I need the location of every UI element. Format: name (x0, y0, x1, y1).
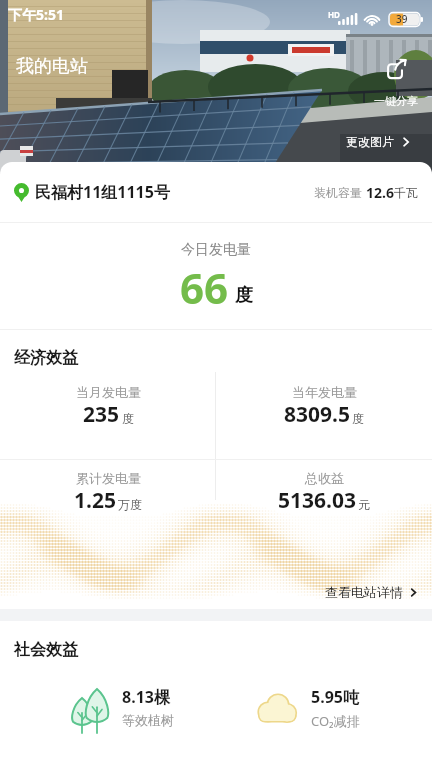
staticText: 度 (235, 284, 253, 307)
staticText: 经济效益 (14, 348, 78, 368)
staticText: 装机容量 (314, 184, 366, 200)
staticText: 66 (180, 259, 229, 316)
staticText: 累计发电量 (76, 470, 141, 486)
staticText: 总收益 (305, 470, 344, 486)
staticText: 一键分享 (374, 94, 418, 108)
staticText: 8.13棵 (122, 686, 170, 708)
staticText: 当年发电量 (292, 384, 357, 400)
staticText: 当月发电量 (76, 384, 141, 400)
button[interactable]: 一键分享 (374, 52, 418, 108)
staticText: 等效植树 (122, 712, 174, 728)
staticText: HD (328, 9, 340, 20)
staticText: CO₂减排 (311, 712, 360, 730)
staticText: 5.95吨 (311, 686, 359, 708)
staticText: 8309.5 (284, 400, 350, 429)
staticText: 12.6 (366, 183, 394, 202)
staticText: 下午5:51 (8, 5, 64, 24)
staticText: 235 (83, 400, 120, 429)
staticText: 千瓦 (394, 185, 418, 200)
staticText: 度 (122, 411, 134, 426)
button[interactable]: 累计发电量 (0, 470, 216, 546)
staticText: 今日发电量 (181, 241, 251, 259)
staticText: 万度 (118, 497, 142, 512)
button[interactable]: 当年发电量 (216, 384, 432, 460)
staticText: 更改图片 (346, 134, 394, 149)
staticText: 39 (396, 12, 408, 26)
button[interactable]: 总收益 (216, 470, 432, 546)
staticText: 5136.03 (278, 486, 356, 515)
button[interactable]: 当月发电量 (0, 384, 216, 460)
staticText: 元 (358, 497, 370, 512)
button[interactable]: 更改图片 (340, 128, 417, 155)
staticText: 我的电站 (16, 55, 88, 78)
staticText: 度 (352, 411, 364, 426)
staticText: 社会效益 (14, 640, 78, 660)
staticText: 1.25 (74, 486, 116, 515)
staticText: 查看电站详情 (325, 584, 403, 600)
staticText: 民福村11组1115号 (35, 181, 170, 203)
button[interactable]: 查看电站详情 (311, 578, 432, 606)
button[interactable]: 民福村11组1115号 (0, 162, 432, 222)
